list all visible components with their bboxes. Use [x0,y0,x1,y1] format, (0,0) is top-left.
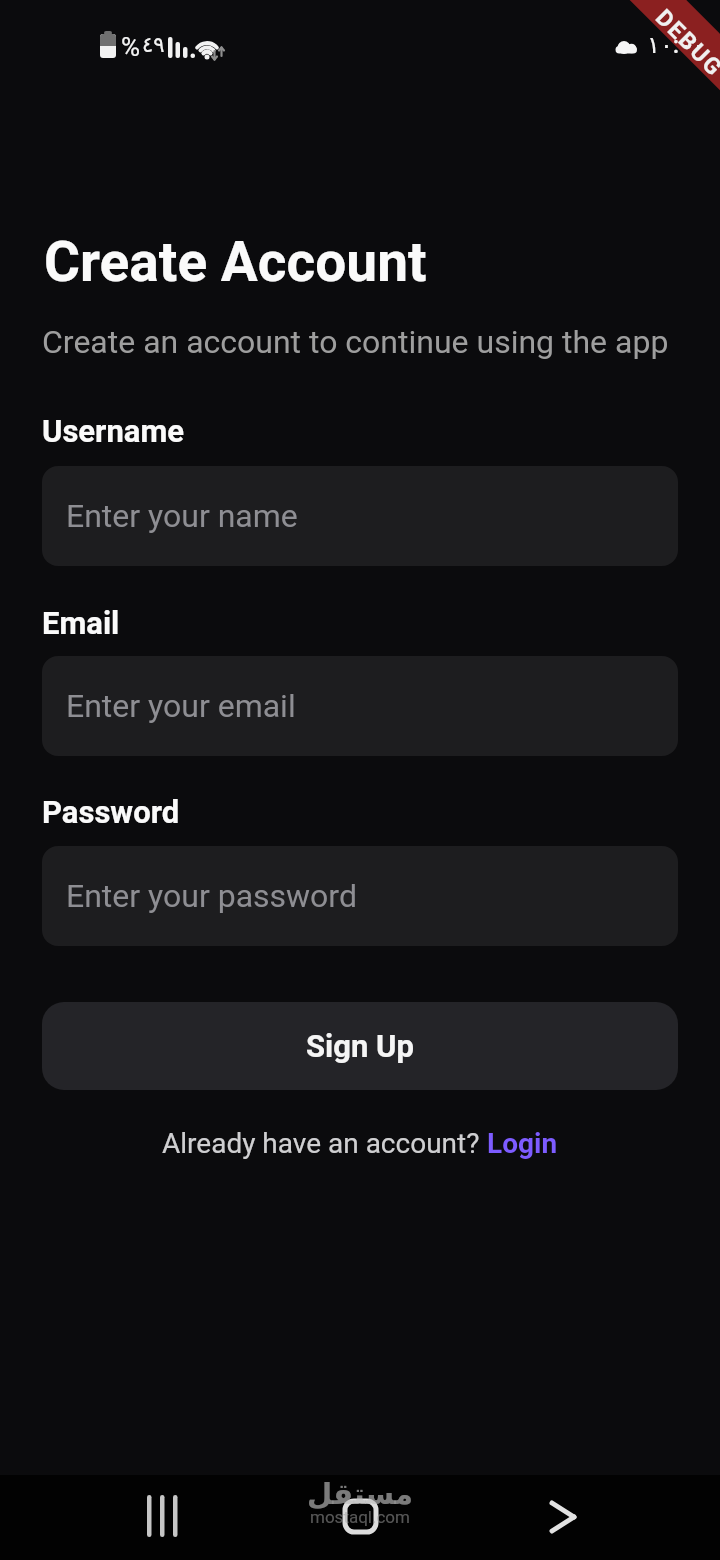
button[interactable]: Enter your password [42,846,678,946]
button[interactable]: Sign Up [42,1002,678,1090]
staticText: Email [42,605,120,641]
staticText: Username [42,413,185,449]
staticText: mostaql.com [310,1507,410,1527]
button[interactable] [240,1475,480,1560]
staticText: Enter your email [66,687,296,725]
staticText: مستقل [307,1477,414,1511]
staticText: Create an account to continue using the … [42,323,669,361]
button[interactable] [480,1475,720,1560]
staticText: Password [42,794,180,830]
staticText: DEBUG [650,4,720,83]
staticText: % [121,32,141,62]
staticText: Already have an account? [162,1127,487,1160]
button[interactable] [0,1475,240,1560]
staticText: ١٠:٠٠ [647,31,705,59]
button[interactable]: Login [487,1127,558,1160]
button[interactable]: Enter your email [42,656,678,756]
staticText: ٤٩ [142,33,165,57]
button[interactable]: Enter your name [42,466,678,566]
staticText: Create Account [44,230,427,294]
staticText: Enter your name [66,497,298,535]
staticText: Enter your password [66,877,357,915]
staticText: Sign Up [306,1028,414,1064]
